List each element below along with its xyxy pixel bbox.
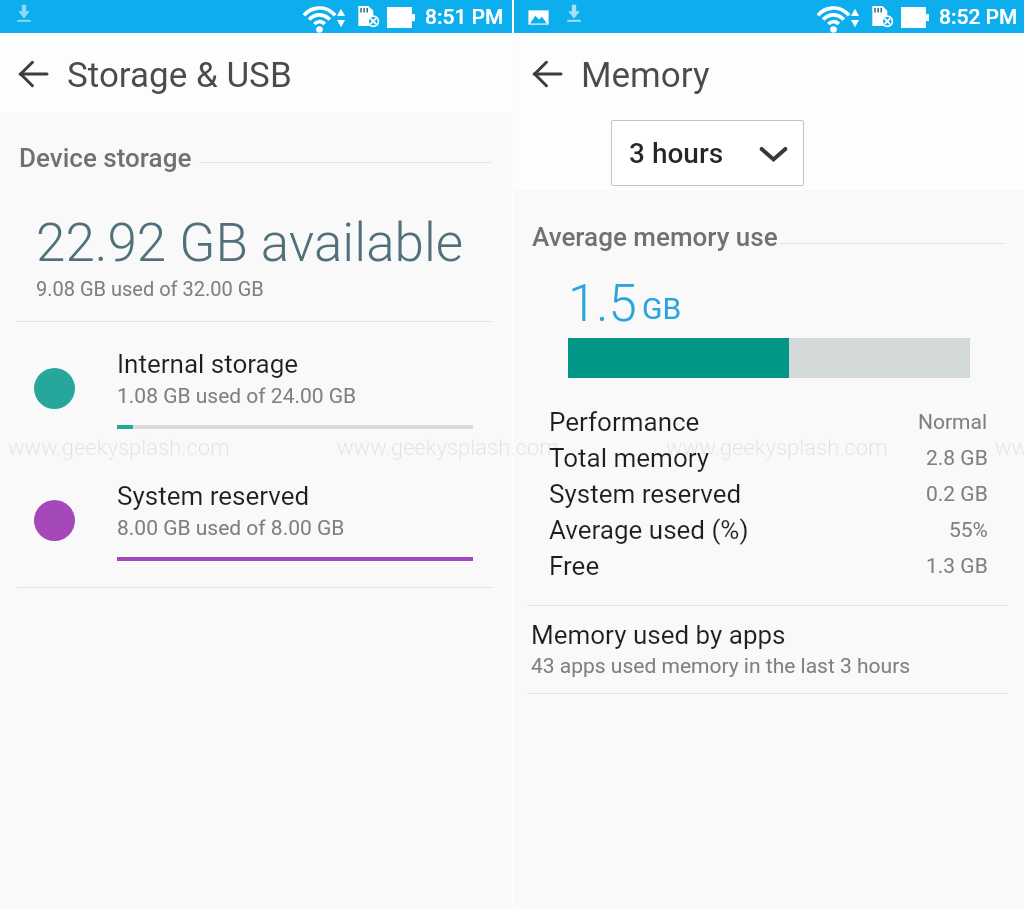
staticText: 1.3 GB: [926, 554, 988, 579]
button[interactable]: 3 hours: [611, 120, 804, 186]
staticText: 9.08 GB used of 32.00 GB: [36, 277, 264, 300]
staticText: Performance: [549, 407, 700, 437]
staticText: 8:52 PM: [939, 5, 1018, 30]
button[interactable]: Average used (%): [514, 513, 1024, 549]
button[interactable]: Memory used by apps: [514, 606, 1024, 695]
staticText: 3 hours: [629, 137, 724, 170]
button[interactable]: System reserved: [514, 477, 1024, 513]
staticText: Average used (%): [549, 515, 749, 545]
button[interactable]: System reserved: [0, 472, 512, 592]
staticText: Memory: [581, 55, 710, 96]
staticText: 2.8 GB: [926, 446, 988, 471]
staticText: System reserved: [117, 481, 310, 511]
staticText: www.geekysplash.com: [8, 435, 230, 461]
staticText: System reserved: [549, 479, 742, 509]
staticText: Total memory: [549, 443, 710, 473]
staticText: 8.00 GB used of 8.00 GB: [117, 516, 345, 541]
button[interactable]: Back: [9, 50, 57, 98]
staticText: 43 apps used memory in the last 3 hours: [531, 654, 911, 679]
staticText: www.geekysplash.com: [995, 435, 1024, 461]
staticText: 22.92 GB available: [36, 212, 464, 274]
staticText: Device storage: [19, 143, 192, 173]
staticText: Internal storage: [117, 349, 299, 379]
button[interactable]: Back: [523, 50, 571, 98]
staticText: 0.2 GB: [926, 482, 988, 507]
staticText: Normal: [918, 410, 988, 435]
button[interactable]: Total memory: [514, 441, 1024, 477]
staticText: Storage & USB: [67, 55, 292, 96]
staticText: 55%: [949, 518, 988, 543]
staticText: 1.08 GB used of 24.00 GB: [117, 384, 357, 409]
staticText: 1.5: [568, 274, 637, 334]
staticText: Memory used by apps: [531, 620, 786, 650]
staticText: Average memory use: [532, 222, 778, 252]
button[interactable]: Free: [514, 549, 1024, 585]
button[interactable]: Internal storage: [0, 340, 512, 460]
button[interactable]: Performance: [514, 405, 1024, 441]
staticText: www.geekysplash.com: [666, 435, 888, 461]
staticText: GB: [642, 291, 682, 326]
staticText: 8:51 PM: [425, 5, 504, 30]
staticText: www.geekysplash.com: [337, 435, 559, 461]
staticText: Free: [549, 551, 600, 581]
